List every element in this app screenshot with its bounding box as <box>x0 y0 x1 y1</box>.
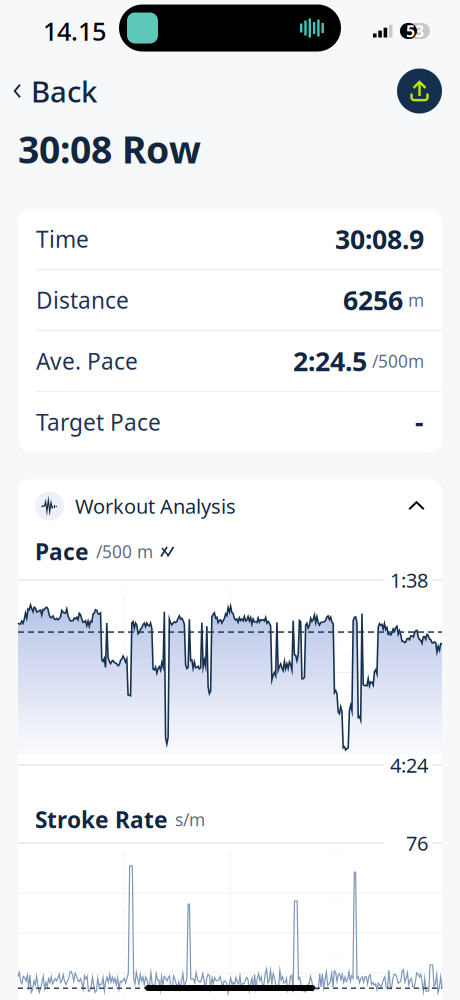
staticText: 4:24 <box>390 752 428 778</box>
staticText: Target Pace <box>36 407 161 437</box>
staticText: /500 m <box>96 540 153 563</box>
staticText: /500m <box>367 349 424 372</box>
button[interactable]: Share <box>397 68 460 113</box>
staticText: Time <box>36 224 89 254</box>
button[interactable]: Back <box>0 62 111 119</box>
staticText: Workout Analysis <box>75 493 236 519</box>
staticText: Ave. Pace <box>36 346 138 376</box>
staticText: 14.15 <box>43 14 106 48</box>
staticText: 53 <box>406 20 424 42</box>
staticText: Stroke Rate <box>35 804 168 834</box>
staticText: - <box>415 404 424 440</box>
staticText: 1:38 <box>390 567 428 593</box>
staticText: m <box>403 288 424 311</box>
staticText: 76 <box>406 830 428 856</box>
staticText: 2:24.5 <box>293 343 367 379</box>
staticText: 30:08.9 <box>335 221 424 257</box>
staticText: Distance <box>36 285 129 315</box>
staticText: Back <box>31 71 97 110</box>
button[interactable]: Workout Analysis <box>18 479 442 533</box>
staticText: Pace <box>35 536 89 566</box>
staticText: 30:08 Row <box>18 124 201 174</box>
staticText: s/m <box>175 808 205 831</box>
staticText: 6256 <box>343 282 403 318</box>
